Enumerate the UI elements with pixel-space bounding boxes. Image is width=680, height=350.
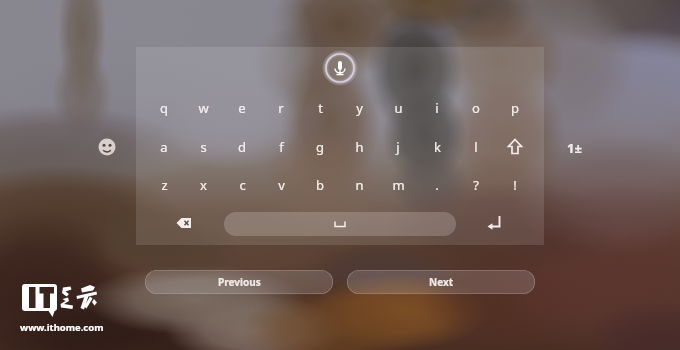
button[interactable]: u — [383, 93, 413, 123]
button[interactable]: t — [305, 93, 335, 123]
staticText: b — [316, 176, 324, 194]
button[interactable]: h — [344, 132, 374, 162]
staticText: o — [472, 99, 480, 117]
button[interactable]: Previous — [145, 270, 333, 294]
button[interactable]: z — [149, 170, 179, 200]
button[interactable]: Space — [224, 212, 456, 236]
staticText: g — [316, 138, 324, 156]
staticText: e — [238, 99, 246, 117]
staticText: s — [200, 138, 207, 156]
staticText: www.ithome.com — [20, 321, 104, 334]
button[interactable]: Shift — [500, 132, 530, 162]
button[interactable]: x — [188, 170, 218, 200]
staticText: c — [239, 176, 246, 194]
button[interactable]: ! — [500, 170, 530, 200]
staticText: z — [161, 176, 168, 194]
staticText: y — [356, 99, 363, 117]
staticText: ! — [513, 176, 517, 194]
button[interactable]: Voice input — [322, 50, 358, 86]
staticText: h — [355, 138, 364, 156]
button[interactable]: w — [188, 93, 218, 123]
button[interactable]: g — [305, 132, 335, 162]
staticText: ? — [473, 176, 479, 194]
button[interactable]: l — [461, 132, 491, 162]
staticText: f — [279, 138, 284, 156]
button[interactable]: y — [344, 93, 374, 123]
button[interactable]: o — [461, 93, 491, 123]
button[interactable]: 1± — [559, 133, 589, 163]
staticText: v — [278, 176, 285, 194]
staticText: l — [474, 138, 478, 156]
button[interactable]: f — [266, 132, 296, 162]
staticText: 1± — [567, 139, 582, 157]
staticText: m — [392, 176, 405, 194]
button[interactable]: p — [500, 93, 530, 123]
button[interactable]: Next — [347, 270, 535, 294]
button[interactable]: Emoji — [92, 132, 122, 162]
button[interactable]: k — [422, 132, 452, 162]
staticText: u — [394, 99, 403, 117]
button[interactable]: ? — [461, 170, 491, 200]
button[interactable]: d — [227, 132, 257, 162]
button[interactable]: Backspace — [169, 208, 199, 238]
staticText: w — [198, 99, 209, 117]
button[interactable]: j — [383, 132, 413, 162]
staticText: p — [511, 99, 519, 117]
staticText: i — [435, 99, 439, 117]
button[interactable]: n — [344, 170, 374, 200]
button[interactable]: q — [149, 93, 179, 123]
button[interactable]: c — [227, 170, 257, 200]
button[interactable]: r — [266, 93, 296, 123]
button[interactable]: a — [149, 132, 179, 162]
button[interactable]: Enter — [480, 208, 510, 238]
button[interactable]: m — [383, 170, 413, 200]
button[interactable]: b — [305, 170, 335, 200]
staticText: Next — [429, 275, 454, 289]
button[interactable]: s — [188, 132, 218, 162]
staticText: q — [160, 99, 168, 117]
staticText: d — [238, 138, 246, 156]
staticText: n — [355, 176, 364, 194]
button[interactable]: . — [422, 170, 452, 200]
staticText: Previous — [218, 275, 261, 289]
staticText: r — [278, 99, 284, 117]
staticText: a — [160, 138, 168, 156]
staticText: k — [434, 138, 441, 156]
button[interactable]: v — [266, 170, 296, 200]
button[interactable]: i — [422, 93, 452, 123]
staticText: x — [200, 176, 207, 194]
button[interactable]: e — [227, 93, 257, 123]
staticText: . — [435, 176, 439, 194]
staticText: t — [318, 99, 323, 117]
staticText: j — [396, 138, 400, 156]
